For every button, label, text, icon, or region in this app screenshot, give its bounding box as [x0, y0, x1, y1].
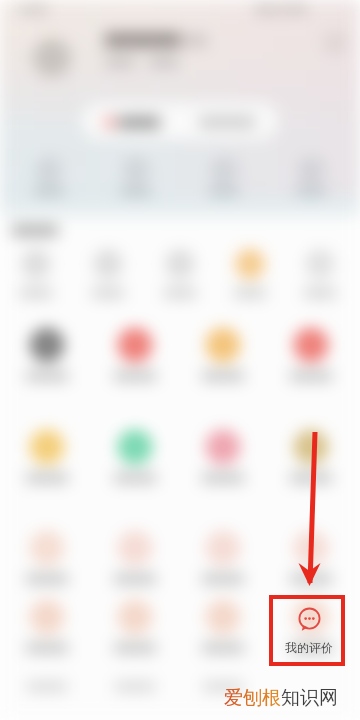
- button[interactable]: [13, 428, 81, 488]
- button[interactable]: [11, 160, 87, 196]
- button[interactable]: [13, 326, 81, 386]
- button[interactable]: [88, 111, 176, 133]
- button[interactable]: [182, 111, 272, 133]
- button[interactable]: [13, 598, 81, 658]
- button[interactable]: [98, 160, 174, 196]
- button[interactable]: [277, 598, 345, 658]
- button[interactable]: [273, 160, 349, 196]
- staticText: 爱刨根: [224, 686, 281, 710]
- button[interactable]: [13, 529, 81, 589]
- button[interactable]: [277, 428, 345, 488]
- button[interactable]: [189, 326, 257, 386]
- button[interactable]: [74, 247, 142, 303]
- button[interactable]: [216, 247, 284, 303]
- button[interactable]: [189, 428, 257, 488]
- button[interactable]: [101, 598, 169, 658]
- button[interactable]: [101, 529, 169, 589]
- button[interactable]: [146, 247, 214, 303]
- button[interactable]: [186, 160, 262, 196]
- button[interactable]: [2, 247, 70, 303]
- button[interactable]: [33, 39, 71, 77]
- staticText: 知识网: [281, 686, 338, 710]
- button[interactable]: [189, 598, 257, 658]
- button[interactable]: [277, 326, 345, 386]
- button[interactable]: [286, 247, 354, 303]
- button[interactable]: [277, 529, 345, 589]
- button[interactable]: [189, 529, 257, 589]
- button[interactable]: 我的评价: [269, 595, 345, 666]
- button[interactable]: [101, 428, 169, 488]
- button[interactable]: [101, 326, 169, 386]
- staticText: 我的评价: [285, 640, 333, 655]
